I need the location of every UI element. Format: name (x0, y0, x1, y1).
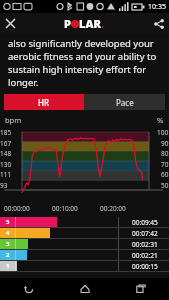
staticText: 50 (161, 181, 169, 190)
button[interactable]: 3 (0, 239, 169, 249)
button[interactable]: 1 (0, 261, 169, 271)
button[interactable]: 2 (0, 250, 169, 260)
staticText: Pace (116, 97, 134, 108)
button[interactable]: Pace (84, 94, 165, 110)
staticText: 185 (0, 128, 12, 137)
staticText: % (157, 115, 164, 125)
button[interactable]: Close (0, 13, 21, 34)
staticText: 00:02:21 (132, 251, 158, 260)
staticText: 70 (161, 160, 169, 169)
staticText: 130 (0, 160, 12, 169)
staticText: 4 (6, 229, 10, 237)
staticText: 60 (161, 170, 169, 179)
staticText: 00:09:45 (132, 218, 158, 227)
button[interactable]: Back (0, 278, 57, 300)
staticText: 00:00:00 (4, 204, 30, 213)
staticText: 111 (0, 170, 12, 179)
staticText: 5 (6, 218, 10, 226)
staticText: 10:35 (148, 2, 166, 12)
staticText: also significantly developed your aerobi… (8, 37, 161, 89)
staticText: 93 (0, 181, 8, 190)
button[interactable]: Recents (113, 278, 169, 300)
button[interactable]: Home (57, 278, 113, 300)
staticText: 00:10:00 (52, 204, 78, 213)
staticText: 2 (6, 251, 10, 259)
staticText: 00:02:31 (132, 240, 158, 249)
staticText: 90 (161, 139, 169, 148)
button[interactable]: 4 (0, 228, 169, 238)
staticText: HR (38, 97, 50, 108)
staticText: 00:20:00 (100, 204, 126, 213)
button[interactable]: HR (4, 94, 84, 110)
staticText: LAR (79, 16, 101, 31)
staticText: . (101, 16, 105, 31)
staticText: P (64, 16, 71, 31)
button[interactable]: 5 (0, 217, 169, 227)
staticText: 148 (0, 149, 12, 158)
staticText: 167 (0, 139, 12, 148)
staticText: 00:00:15 (132, 262, 158, 271)
staticText: bpm (5, 115, 22, 125)
staticText: 80 (161, 149, 169, 158)
staticText: 3 (6, 240, 10, 248)
staticText: 1 (6, 262, 10, 270)
staticText: 100 (157, 128, 169, 137)
staticText: 00:07:42 (132, 229, 158, 238)
button[interactable]: Share (148, 13, 169, 34)
